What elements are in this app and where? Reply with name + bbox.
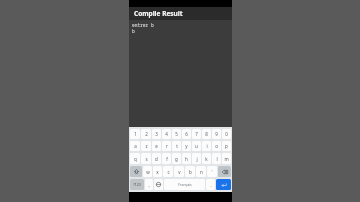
staticText: entrer b: [132, 22, 154, 28]
button[interactable]: n: [196, 166, 206, 177]
button[interactable]: Compile Result: [129, 7, 232, 20]
staticText: 5: [175, 131, 178, 137]
staticText: r: [166, 143, 168, 149]
staticText: 4: [165, 131, 168, 137]
button[interactable]: 3: [152, 129, 161, 139]
button[interactable]: x: [153, 166, 162, 177]
staticText: k: [205, 156, 208, 162]
staticText: i: [206, 143, 208, 149]
staticText: a: [134, 143, 137, 149]
button[interactable]: a: [130, 141, 140, 151]
button[interactable]: o: [212, 141, 221, 151]
button[interactable]: 6: [182, 129, 191, 139]
staticText: z: [145, 143, 148, 149]
button[interactable]: 2: [141, 129, 151, 139]
button[interactable]: l: [212, 153, 221, 164]
staticText: .: [210, 182, 212, 188]
staticText: u: [195, 143, 198, 149]
staticText: 7: [195, 131, 198, 137]
button[interactable]: r: [162, 141, 171, 151]
staticText: ': [211, 169, 213, 175]
button[interactable]: ,: [145, 179, 153, 190]
staticText: 0: [225, 131, 228, 137]
button[interactable]: m: [222, 153, 231, 164]
staticText: Français: [178, 182, 192, 187]
button[interactable]: Français: [164, 179, 205, 190]
staticText: m: [224, 156, 229, 162]
button[interactable]: h: [182, 153, 191, 164]
button[interactable]: v: [174, 166, 184, 177]
button[interactable]: e: [152, 141, 161, 151]
button[interactable]: ?123: [130, 179, 144, 190]
staticText: ?123: [133, 182, 141, 187]
staticText: s: [145, 156, 148, 162]
staticText: g: [175, 156, 178, 162]
button[interactable]: entrer b: [129, 20, 232, 127]
staticText: ,: [148, 182, 150, 188]
button[interactable]: u: [192, 141, 201, 151]
button[interactable]: c: [163, 166, 173, 177]
staticText: 1: [134, 131, 137, 137]
staticText: e: [155, 143, 158, 149]
staticText: 2: [145, 131, 148, 137]
staticText: t: [176, 143, 178, 149]
staticText: h: [185, 156, 188, 162]
button[interactable]: w: [143, 166, 152, 177]
button[interactable]: d: [152, 153, 161, 164]
staticText: 3: [155, 131, 158, 137]
button[interactable]: 9: [212, 129, 221, 139]
button[interactable]: Shift: [130, 166, 142, 177]
button[interactable]: y: [182, 141, 191, 151]
staticText: n: [200, 169, 203, 175]
button[interactable]: f: [162, 153, 171, 164]
button[interactable]: k: [202, 153, 211, 164]
button[interactable]: .: [206, 179, 215, 190]
button[interactable]: i: [202, 141, 211, 151]
button[interactable]: g: [172, 153, 181, 164]
staticText: q: [134, 156, 137, 162]
staticText: w: [146, 169, 150, 175]
button[interactable]: t: [172, 141, 181, 151]
staticText: x: [156, 169, 159, 175]
staticText: f: [166, 156, 168, 162]
button[interactable]: Enter: [216, 179, 231, 190]
staticText: o: [215, 143, 218, 149]
button[interactable]: Backspace: [218, 166, 231, 177]
button[interactable]: j: [192, 153, 201, 164]
button[interactable]: z: [141, 141, 151, 151]
button[interactable]: s: [141, 153, 151, 164]
staticText: Compile Result: [134, 9, 183, 18]
staticText: j: [196, 156, 198, 162]
staticText: 8: [205, 131, 208, 137]
button[interactable]: q: [130, 153, 140, 164]
staticText: v: [178, 169, 181, 175]
button[interactable]: 4: [162, 129, 171, 139]
button[interactable]: 1: [130, 129, 140, 139]
button[interactable]: b: [185, 166, 195, 177]
staticText: b: [132, 28, 135, 34]
button[interactable]: 0: [222, 129, 231, 139]
button[interactable]: 7: [192, 129, 201, 139]
staticText: 9: [215, 131, 218, 137]
button[interactable]: 5: [172, 129, 181, 139]
staticText: b: [189, 169, 192, 175]
button[interactable]: 8: [202, 129, 211, 139]
staticText: l: [216, 156, 218, 162]
button[interactable]: ': [207, 166, 217, 177]
staticText: d: [155, 156, 158, 162]
staticText: c: [167, 169, 170, 175]
staticText: 6: [185, 131, 188, 137]
staticText: p: [225, 143, 228, 149]
staticText: y: [185, 143, 188, 149]
button[interactable]: Emoji: [154, 179, 163, 190]
button[interactable]: p: [222, 141, 231, 151]
